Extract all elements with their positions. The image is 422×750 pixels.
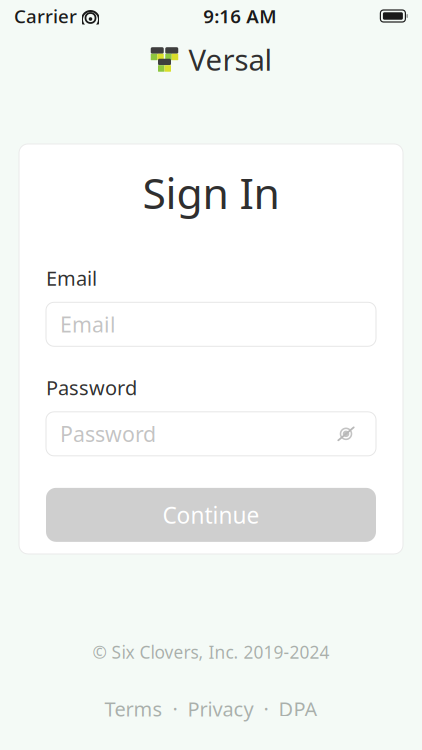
staticText: 9:16 AM [203,4,276,28]
staticText: Versal [188,40,272,79]
button[interactable]: Continue [46,488,376,542]
staticText: Password [60,420,156,448]
staticText: Password [46,374,137,401]
staticText: Terms [104,695,162,722]
staticText: Sign In [142,164,279,221]
staticText: Carrier [14,4,77,28]
staticText: Privacy [187,695,253,722]
staticText: Email [46,265,97,291]
button[interactable]: Show password [330,418,362,450]
staticText: Continue [162,500,259,530]
staticText: · [263,695,268,722]
staticText: · [172,695,177,722]
staticText: Email [60,310,116,338]
button[interactable]: DPA [268,689,327,728]
staticText: © Six Clovers, Inc. 2019-2024 [92,640,329,663]
staticText: DPA [278,695,317,722]
button[interactable]: Privacy [177,689,263,728]
button[interactable]: Terms [94,689,172,728]
